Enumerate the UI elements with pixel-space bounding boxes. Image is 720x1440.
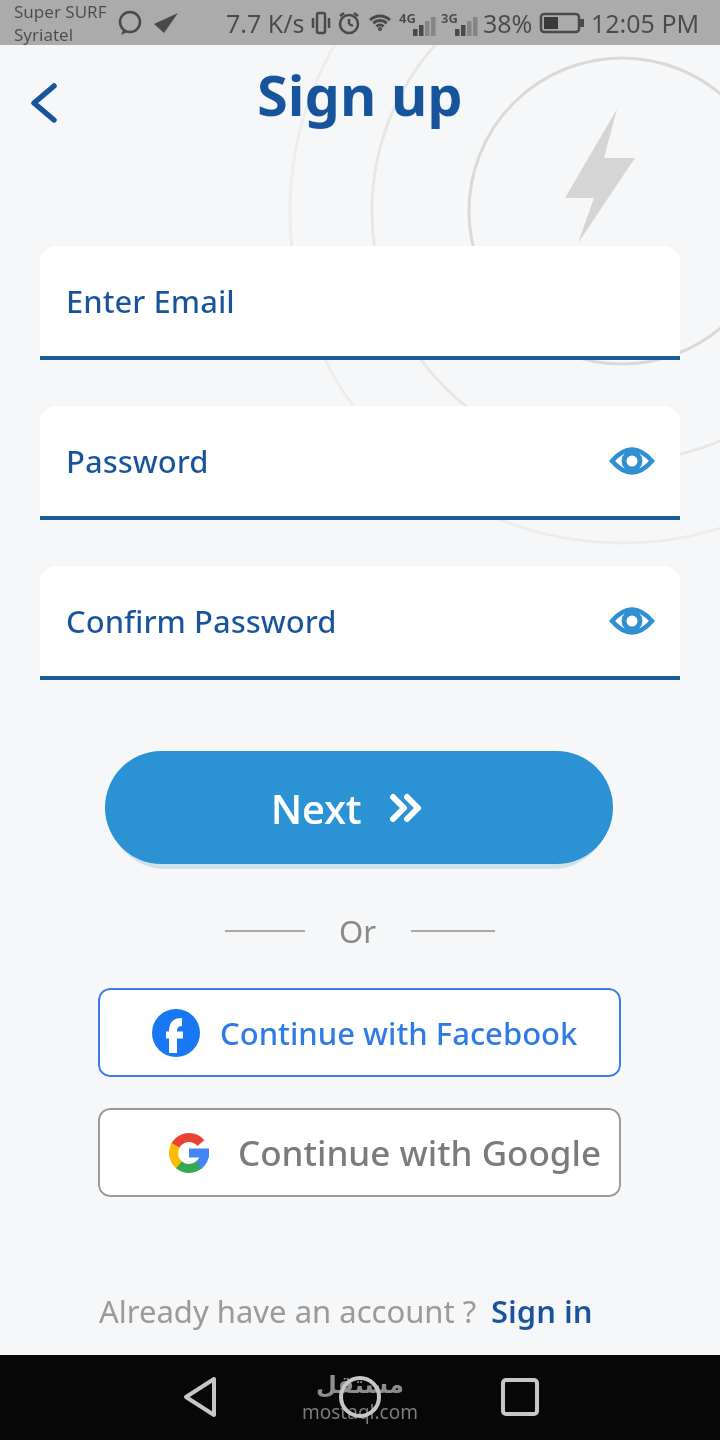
staticText: Already have an account ? (99, 1290, 477, 1332)
staticText: Or (339, 910, 377, 952)
button[interactable] (330, 1367, 390, 1427)
staticText: Continue with Facebook (220, 1012, 578, 1054)
button[interactable]: Next (105, 751, 613, 864)
staticText: mostaql.com (302, 1399, 418, 1425)
button[interactable]: Confirm Password (40, 566, 680, 676)
button[interactable] (20, 78, 68, 128)
staticText: 7.7 K/s (226, 6, 305, 40)
staticText: Confirm Password (66, 600, 337, 642)
button[interactable] (490, 1367, 550, 1427)
button[interactable]: Sign in (491, 1290, 593, 1332)
staticText: Super SURF (14, 0, 107, 23)
staticText: 3G (441, 9, 458, 27)
button[interactable]: Continue with Google (98, 1108, 621, 1197)
button[interactable] (170, 1367, 230, 1427)
staticText: Continue with Google (238, 1129, 602, 1177)
button[interactable]: Password (40, 406, 680, 516)
staticText: Sign up (257, 56, 463, 132)
staticText: Enter Email (66, 280, 235, 322)
staticText: 4G (399, 9, 416, 27)
button[interactable]: Continue with Facebook (98, 988, 621, 1077)
staticText: Next (271, 781, 362, 835)
staticText: مستقل (316, 1371, 404, 1399)
button[interactable]: Enter Email (40, 246, 680, 356)
staticText: 12:05 PM (591, 6, 700, 40)
staticText: Password (66, 440, 209, 482)
staticText: Syriatel (14, 23, 74, 45)
staticText: 38% (483, 6, 533, 40)
